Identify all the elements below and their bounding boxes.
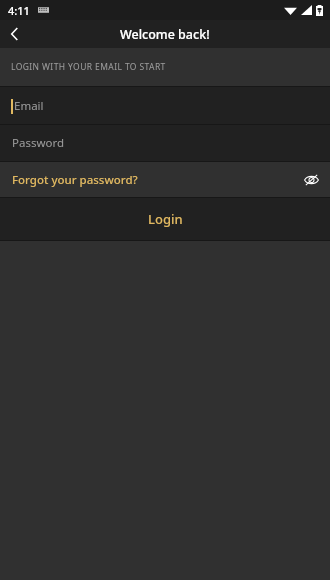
button[interactable]: Show password <box>298 167 324 193</box>
staticText: Email <box>14 98 44 114</box>
staticText: 4:11 <box>8 3 30 18</box>
staticText: Login <box>148 210 183 228</box>
staticText: Forgot your password? <box>12 172 138 188</box>
button[interactable]: Back <box>0 20 28 48</box>
button[interactable]: Email <box>0 87 330 124</box>
button[interactable]: Login <box>0 198 330 240</box>
staticText: LOGIN WITH YOUR EMAIL TO START <box>11 61 166 73</box>
staticText: Welcome back! <box>120 26 210 43</box>
staticText: Password <box>12 135 65 151</box>
button[interactable]: Password <box>0 125 330 161</box>
button[interactable]: Forgot your password? <box>0 166 150 194</box>
